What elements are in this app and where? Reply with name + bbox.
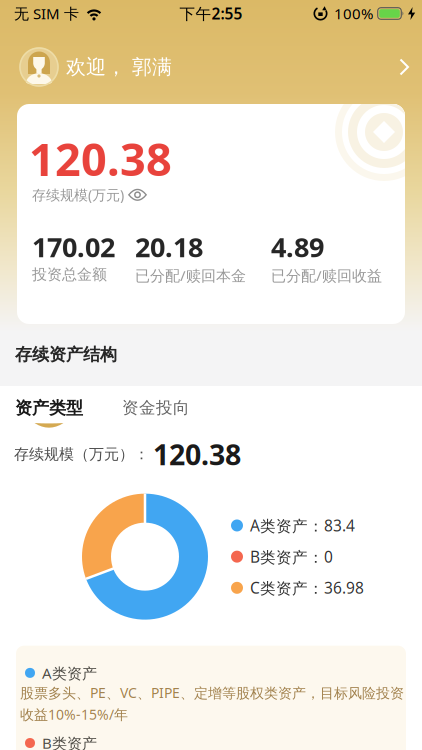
button[interactable]: 资产类型 <box>15 397 83 429</box>
staticText: A类资产：83.4 <box>250 515 355 536</box>
button[interactable]: 资金投向 <box>122 397 190 418</box>
staticText: 投资总金额 <box>32 265 107 284</box>
staticText: 欢迎， 郭满 <box>66 54 172 80</box>
staticText: 下午2:55 <box>179 3 242 24</box>
button[interactable]: 欢迎， 郭满 <box>0 47 422 87</box>
staticText: 170.02 <box>32 228 115 265</box>
staticText: 股票多头、PE、VC、PIPE、定增等股权类资产，目标风险投资收益10%-15%… <box>20 683 404 724</box>
staticText: 120.38 <box>153 435 241 474</box>
button[interactable]: 隐藏金额 <box>128 188 147 201</box>
staticText: 存续资产结构 <box>15 344 117 365</box>
staticText: 已分配/赎回收益 <box>271 265 382 285</box>
staticText: B类资产 <box>42 733 97 750</box>
staticText: 资产类型 <box>15 397 83 419</box>
staticText: 20.18 <box>135 228 203 265</box>
staticText: C类资产：36.98 <box>250 577 364 598</box>
staticText: 资金投向 <box>122 397 190 418</box>
staticText: B类资产：0 <box>250 546 333 567</box>
staticText: A类资产 <box>42 663 97 683</box>
staticText: 100% <box>334 3 373 24</box>
staticText: 120.38 <box>29 128 172 189</box>
staticText: 4.89 <box>271 228 324 265</box>
staticText: 存续规模（万元）： <box>14 445 149 464</box>
staticText: 存续规模(万元) <box>32 185 124 204</box>
staticText: 已分配/赎回本金 <box>135 265 246 285</box>
staticText: 无 SIM 卡 <box>14 3 79 24</box>
